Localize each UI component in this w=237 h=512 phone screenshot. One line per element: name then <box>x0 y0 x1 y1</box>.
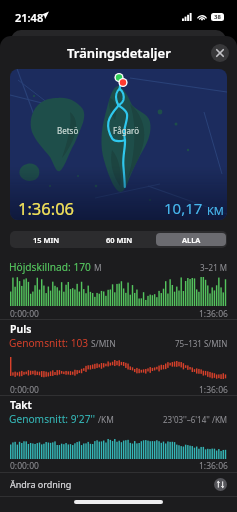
staticText: ALLA <box>182 235 201 245</box>
staticText: 0:00:00 <box>10 308 39 320</box>
button[interactable]: Ändra ordning <box>0 473 237 495</box>
staticText: 0:00:00 <box>10 460 39 472</box>
staticText: 38 <box>214 13 221 21</box>
staticText: 3–21 M <box>200 262 228 273</box>
staticText: Betsö <box>57 125 79 136</box>
button[interactable]: Betsö <box>10 69 227 220</box>
staticText: Genomsnitt: 9'27'' <box>9 412 98 426</box>
staticText: 10,17 <box>164 198 207 218</box>
staticText: Höjdskillnad: 170 <box>9 260 94 274</box>
staticText: Ändra ordning <box>10 478 72 490</box>
staticText: Genomsnitt: 103 <box>9 336 91 350</box>
staticText: 1:36:06 <box>18 197 75 219</box>
staticText: Träningsdetaljer <box>67 44 171 62</box>
staticText: Takt <box>10 398 32 412</box>
button[interactable]: ALLA <box>156 233 226 246</box>
staticText: M <box>94 262 102 273</box>
staticText: KM <box>207 203 224 218</box>
other: Reorder <box>214 478 227 491</box>
button[interactable]: 60 MIN <box>84 233 154 246</box>
staticText: Fågarö <box>113 125 140 136</box>
staticText: 1:36:06 <box>199 308 228 320</box>
button[interactable]: Close <box>211 44 229 62</box>
staticText: /KM <box>98 414 114 425</box>
button[interactable]: 15 MIN <box>11 233 82 246</box>
staticText: 1:36:06 <box>199 384 228 396</box>
staticText: 60 MIN <box>106 235 133 245</box>
staticText: 0:00:00 <box>10 384 39 396</box>
staticText: 1:36:06 <box>199 460 228 472</box>
staticText: 23'03''–6'14'' /KM <box>163 414 228 425</box>
staticText: Puls <box>10 322 32 336</box>
staticText: S/MIN <box>91 338 116 349</box>
staticText: 75–131 S/MIN <box>175 338 228 349</box>
staticText: 21:48 <box>15 10 44 25</box>
staticText: 15 MIN <box>33 235 60 245</box>
